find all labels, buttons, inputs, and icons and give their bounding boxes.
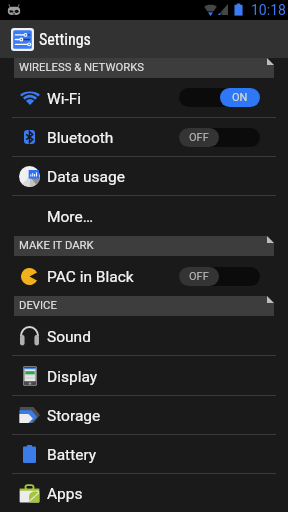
button[interactable]: Sound — [0, 316, 288, 355]
staticText: Storage — [47, 407, 101, 425]
button[interactable]: Data usage — [0, 157, 288, 195]
staticText: MAKE IT DARK — [19, 239, 94, 252]
button[interactable]: Bluetooth — [0, 118, 288, 156]
button[interactable]: OFF — [179, 128, 260, 147]
staticText: Wi-Fi — [47, 90, 82, 108]
button[interactable]: Battery — [0, 435, 288, 473]
staticText: 10:18 — [251, 2, 286, 18]
staticText: DEVICE — [19, 299, 57, 312]
button[interactable]: Wi-Fi — [0, 78, 288, 117]
button[interactable]: Settings — [0, 20, 288, 58]
staticText: OFF — [189, 131, 209, 144]
staticText: ON — [232, 91, 248, 104]
staticText: OFF — [189, 270, 209, 283]
staticText: More… — [47, 208, 94, 226]
button[interactable]: Apps — [0, 474, 288, 512]
staticText: Apps — [47, 485, 83, 503]
staticText: Display — [47, 368, 98, 386]
button[interactable]: Display — [0, 356, 288, 395]
button[interactable]: More… — [0, 196, 288, 236]
button[interactable]: PAC in Black — [0, 256, 288, 296]
button[interactable]: ON — [179, 88, 260, 107]
staticText: Battery — [47, 446, 97, 464]
staticText: Bluetooth — [47, 129, 114, 147]
staticText: WIRELESS & NETWORKS — [19, 61, 144, 74]
button[interactable]: Storage — [0, 396, 288, 434]
staticText: PAC in Black — [47, 268, 134, 286]
staticText: Data usage — [47, 168, 125, 186]
staticText: Sound — [47, 328, 91, 346]
staticText: Settings — [39, 30, 91, 49]
button[interactable]: OFF — [179, 267, 260, 286]
